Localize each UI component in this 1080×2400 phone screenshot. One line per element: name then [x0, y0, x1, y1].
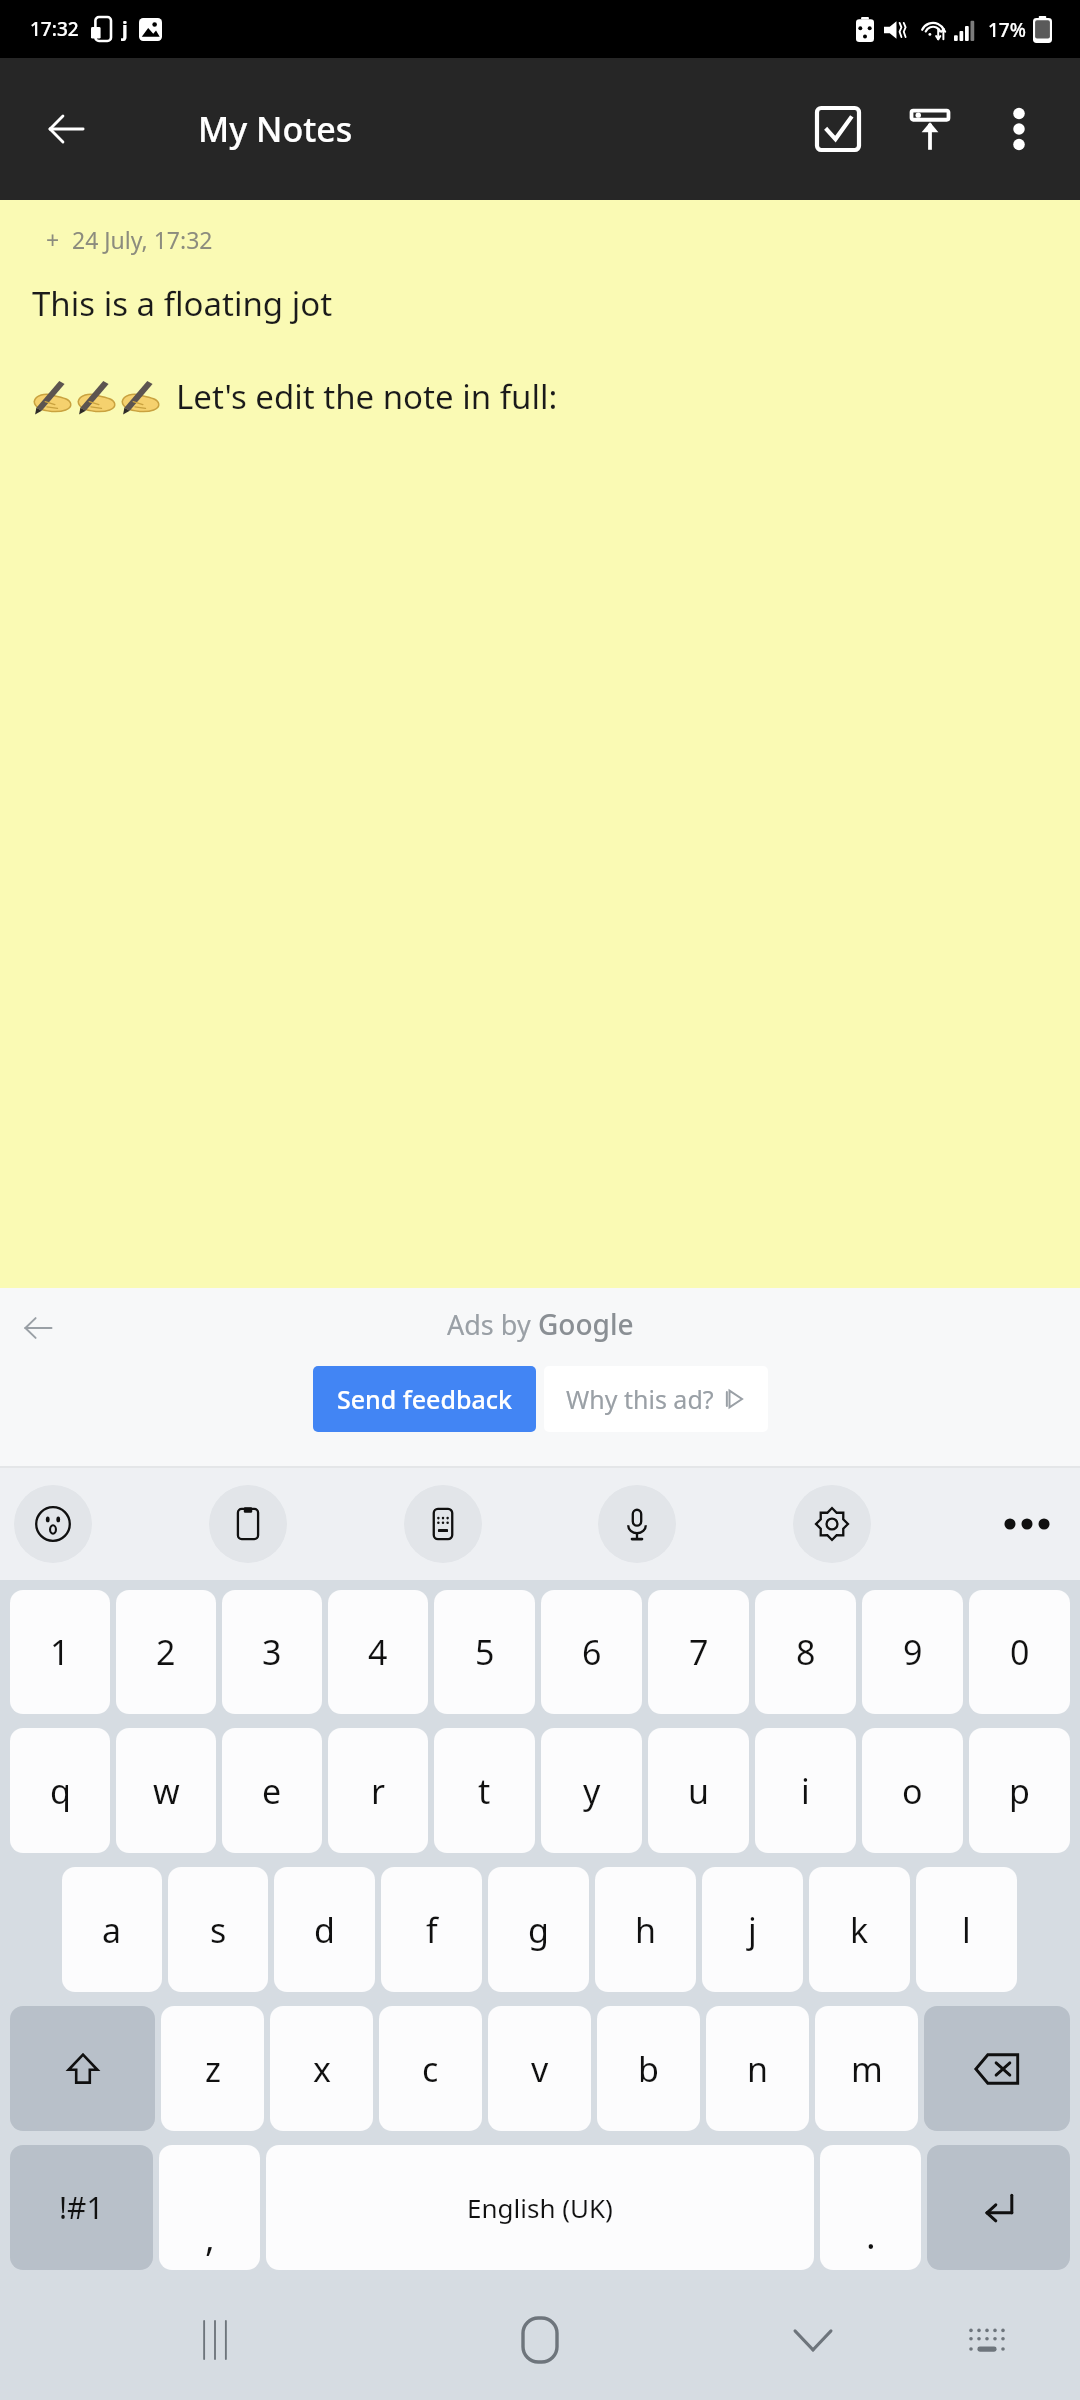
button[interactable]: q: [10, 1728, 110, 1853]
button[interactable]: Hide keyboard: [768, 2295, 858, 2385]
button[interactable]: p: [969, 1728, 1070, 1853]
button[interactable]: c: [379, 2006, 482, 2131]
staticText: g: [528, 1907, 549, 1953]
staticText: t: [478, 1768, 491, 1814]
staticText: 3: [262, 1629, 282, 1675]
button[interactable]: u: [648, 1728, 749, 1853]
button[interactable]: v: [488, 2006, 591, 2131]
staticText: i: [801, 1768, 810, 1814]
button[interactable]: r: [328, 1728, 428, 1853]
staticText: 5: [475, 1629, 495, 1675]
button[interactable]: More: [988, 1485, 1066, 1563]
button[interactable]: Recent apps: [170, 2295, 260, 2385]
staticText: r: [371, 1768, 386, 1814]
staticText: z: [205, 2046, 221, 2092]
button[interactable]: Clipboard: [209, 1485, 287, 1563]
staticText: w: [153, 1768, 180, 1814]
button[interactable]: 2: [116, 1590, 216, 1714]
button[interactable]: h: [595, 1867, 696, 1992]
button[interactable]: b: [597, 2006, 700, 2131]
button[interactable]: 9: [862, 1590, 963, 1714]
staticText: u: [688, 1768, 710, 1814]
staticText: 4: [368, 1629, 388, 1675]
button[interactable]: Backspace: [924, 2006, 1070, 2131]
staticText: f: [426, 1907, 438, 1953]
staticText: h: [635, 1907, 657, 1953]
staticText: n: [747, 2046, 769, 2092]
staticText: 9: [903, 1629, 923, 1675]
staticText: .: [866, 2211, 876, 2260]
staticText: j: [748, 1907, 757, 1953]
staticText: s: [210, 1907, 227, 1953]
button[interactable]: 5: [434, 1590, 535, 1714]
staticText: ,: [205, 2213, 215, 2262]
staticText: c: [422, 2046, 439, 2092]
staticText: o: [902, 1768, 923, 1814]
button[interactable]: Change keyboard: [942, 2295, 1032, 2385]
button[interactable]: More options: [976, 86, 1062, 172]
staticText: This is a floating jot: [32, 281, 333, 326]
button[interactable]: 0: [969, 1590, 1070, 1714]
button[interactable]: ,: [159, 2145, 260, 2270]
button[interactable]: s: [168, 1867, 268, 1992]
staticText: m: [851, 2046, 883, 2092]
button[interactable]: +: [0, 200, 1080, 1288]
button[interactable]: Export: [884, 83, 976, 175]
button[interactable]: e: [222, 1728, 322, 1853]
button[interactable]: 8: [755, 1590, 856, 1714]
staticText: Ads by: [447, 1306, 538, 1343]
staticText: 24 July, 17:32: [72, 224, 213, 255]
button[interactable]: j: [702, 1867, 803, 1992]
button[interactable]: 3: [222, 1590, 322, 1714]
button[interactable]: Send feedback: [313, 1366, 536, 1432]
button[interactable]: !#1: [10, 2145, 153, 2270]
button[interactable]: Home: [495, 2295, 585, 2385]
button[interactable]: Why this ad?: [544, 1366, 768, 1432]
button[interactable]: Back: [8, 1298, 68, 1358]
button[interactable]: 6: [541, 1590, 642, 1714]
staticText: d: [314, 1907, 335, 1953]
button[interactable]: Settings: [793, 1485, 871, 1563]
button[interactable]: 1: [10, 1590, 110, 1714]
button[interactable]: w: [116, 1728, 216, 1853]
button[interactable]: i: [755, 1728, 856, 1853]
button[interactable]: g: [488, 1867, 589, 1992]
staticText: 7: [689, 1629, 709, 1675]
button[interactable]: k: [809, 1867, 910, 1992]
button[interactable]: m: [815, 2006, 918, 2131]
button[interactable]: Checklist: [792, 83, 884, 175]
button[interactable]: Stickers: [404, 1485, 482, 1563]
staticText: j: [122, 16, 128, 42]
staticText: x: [313, 2046, 331, 2092]
button[interactable]: .: [820, 2145, 921, 2270]
button[interactable]: a: [62, 1867, 162, 1992]
staticText: Google: [538, 1305, 634, 1343]
button[interactable]: Emoji: [14, 1485, 92, 1563]
staticText: 1: [50, 1629, 70, 1675]
staticText: q: [50, 1768, 71, 1814]
staticText: 17:32: [30, 16, 79, 42]
staticText: +: [46, 224, 60, 255]
staticText: My Notes: [198, 106, 353, 152]
button[interactable]: t: [434, 1728, 535, 1853]
button[interactable]: 4: [328, 1590, 428, 1714]
button[interactable]: x: [270, 2006, 373, 2131]
button[interactable]: 7: [648, 1590, 749, 1714]
staticText: 8: [796, 1629, 816, 1675]
staticText: l: [962, 1907, 971, 1953]
staticText: p: [1009, 1768, 1030, 1814]
button[interactable]: d: [274, 1867, 375, 1992]
button[interactable]: o: [862, 1728, 963, 1853]
button[interactable]: y: [541, 1728, 642, 1853]
button[interactable]: l: [916, 1867, 1017, 1992]
button[interactable]: Back: [22, 85, 110, 173]
button[interactable]: Enter: [927, 2145, 1070, 2270]
button[interactable]: n: [706, 2006, 809, 2131]
button[interactable]: f: [381, 1867, 482, 1992]
staticText: b: [638, 2046, 659, 2092]
button[interactable]: Voice input: [598, 1485, 676, 1563]
button[interactable]: Shift: [10, 2006, 155, 2131]
staticText: e: [262, 1768, 282, 1814]
button[interactable]: English (UK): [266, 2145, 814, 2270]
button[interactable]: z: [161, 2006, 264, 2131]
